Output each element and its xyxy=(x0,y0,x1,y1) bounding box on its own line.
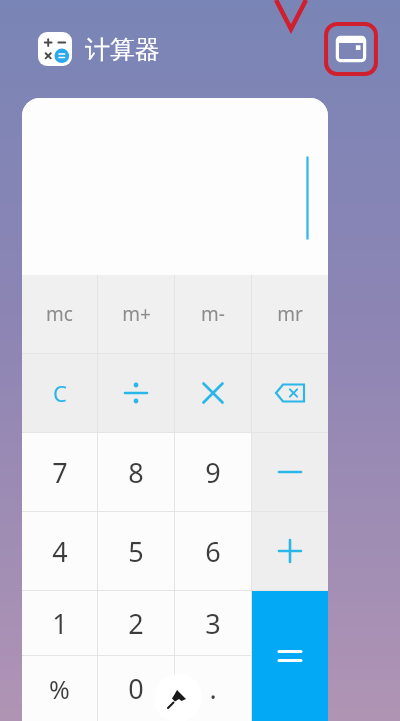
button[interactable]: 5 xyxy=(98,512,174,590)
button[interactable]: 7 xyxy=(22,433,97,511)
staticText: . xyxy=(209,670,217,707)
staticText: 5 xyxy=(128,533,144,570)
staticText: % xyxy=(49,672,70,706)
staticText: 4 xyxy=(52,533,68,570)
button[interactable]: Plus xyxy=(252,512,328,590)
staticText: m- xyxy=(201,301,225,327)
button[interactable]: Backspace xyxy=(252,354,328,432)
button[interactable]: Equals xyxy=(252,591,328,721)
staticText: 8 xyxy=(128,454,144,491)
button[interactable]: C xyxy=(22,354,97,432)
button[interactable]: m- xyxy=(175,275,251,353)
button[interactable]: 4 xyxy=(22,512,97,590)
button[interactable]: 2 xyxy=(98,591,174,655)
button[interactable]: Divide xyxy=(98,354,174,432)
staticText: C xyxy=(53,378,67,408)
staticText: 1 xyxy=(52,605,68,642)
button[interactable]: 8 xyxy=(98,433,174,511)
button[interactable]: 3 xyxy=(175,591,251,655)
staticText: 0 xyxy=(128,670,144,707)
button[interactable]: 9 xyxy=(175,433,251,511)
staticText: 3 xyxy=(205,605,221,642)
button[interactable]: Minus xyxy=(252,433,328,511)
staticText: 计算器 xyxy=(85,34,160,65)
staticText: mr xyxy=(277,301,303,327)
button[interactable]: Multiply xyxy=(175,354,251,432)
staticText: 6 xyxy=(205,533,221,570)
staticText: mc xyxy=(46,301,73,327)
button[interactable]: mr xyxy=(252,275,328,353)
button[interactable]: % xyxy=(22,656,97,721)
button[interactable]: 1 xyxy=(22,591,97,655)
button[interactable]: . xyxy=(175,656,251,721)
button[interactable]: 0 xyxy=(98,656,174,721)
staticText: 9 xyxy=(205,454,221,491)
button[interactable]: 6 xyxy=(175,512,251,590)
staticText: 2 xyxy=(128,605,144,642)
button[interactable]: m+ xyxy=(98,275,174,353)
button[interactable]: mc xyxy=(22,275,97,353)
staticText: 7 xyxy=(52,454,68,491)
staticText: m+ xyxy=(122,301,151,327)
button[interactable]: Window mode xyxy=(322,20,380,78)
button[interactable]: Pin xyxy=(154,674,202,721)
